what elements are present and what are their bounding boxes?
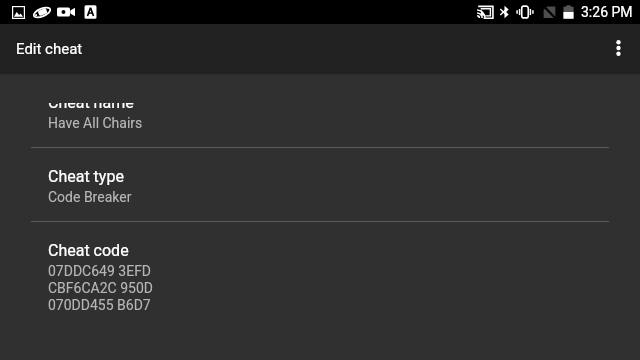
staticText: Have All Chairs: [48, 115, 143, 131]
button[interactable]: Cheat type: [0, 148, 640, 222]
staticText: Cheat name: [48, 103, 134, 112]
button[interactable]: Cheat code: [0, 222, 640, 330]
staticText: Cheat code: [48, 241, 129, 260]
button[interactable]: More options: [596, 26, 640, 70]
staticText: 07DDC649 3EFD CBF6CA2C 950D 070DD455 B6D…: [48, 263, 153, 314]
button[interactable]: Cheat name: [0, 103, 640, 147]
staticText: Code Breaker: [48, 189, 132, 205]
staticText: 3:26 PM: [581, 4, 633, 20]
staticText: Edit cheat: [16, 40, 83, 58]
staticText: Cheat type: [48, 167, 124, 186]
